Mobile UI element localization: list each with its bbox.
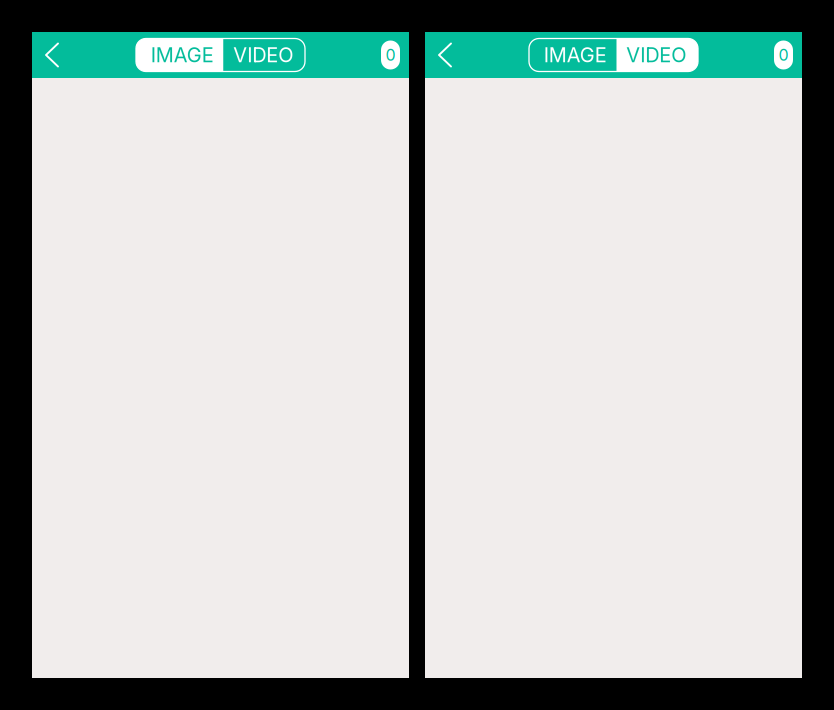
staticText: IMAGE: [151, 43, 214, 67]
button[interactable]: Back: [32, 32, 69, 78]
staticText: VIDEO: [626, 43, 686, 67]
button[interactable]: VIDEO: [223, 38, 305, 71]
button[interactable]: IMAGE: [529, 38, 616, 71]
button[interactable]: Selected items, 0: [774, 32, 802, 78]
staticText: 0: [385, 45, 395, 65]
button[interactable]: Back: [425, 32, 462, 78]
button[interactable]: Selected items, 0: [381, 32, 409, 78]
staticText: 0: [778, 45, 788, 65]
staticText: VIDEO: [233, 43, 293, 67]
button[interactable]: VIDEO: [616, 38, 698, 71]
button[interactable]: IMAGE: [136, 38, 223, 71]
staticText: IMAGE: [544, 43, 607, 67]
